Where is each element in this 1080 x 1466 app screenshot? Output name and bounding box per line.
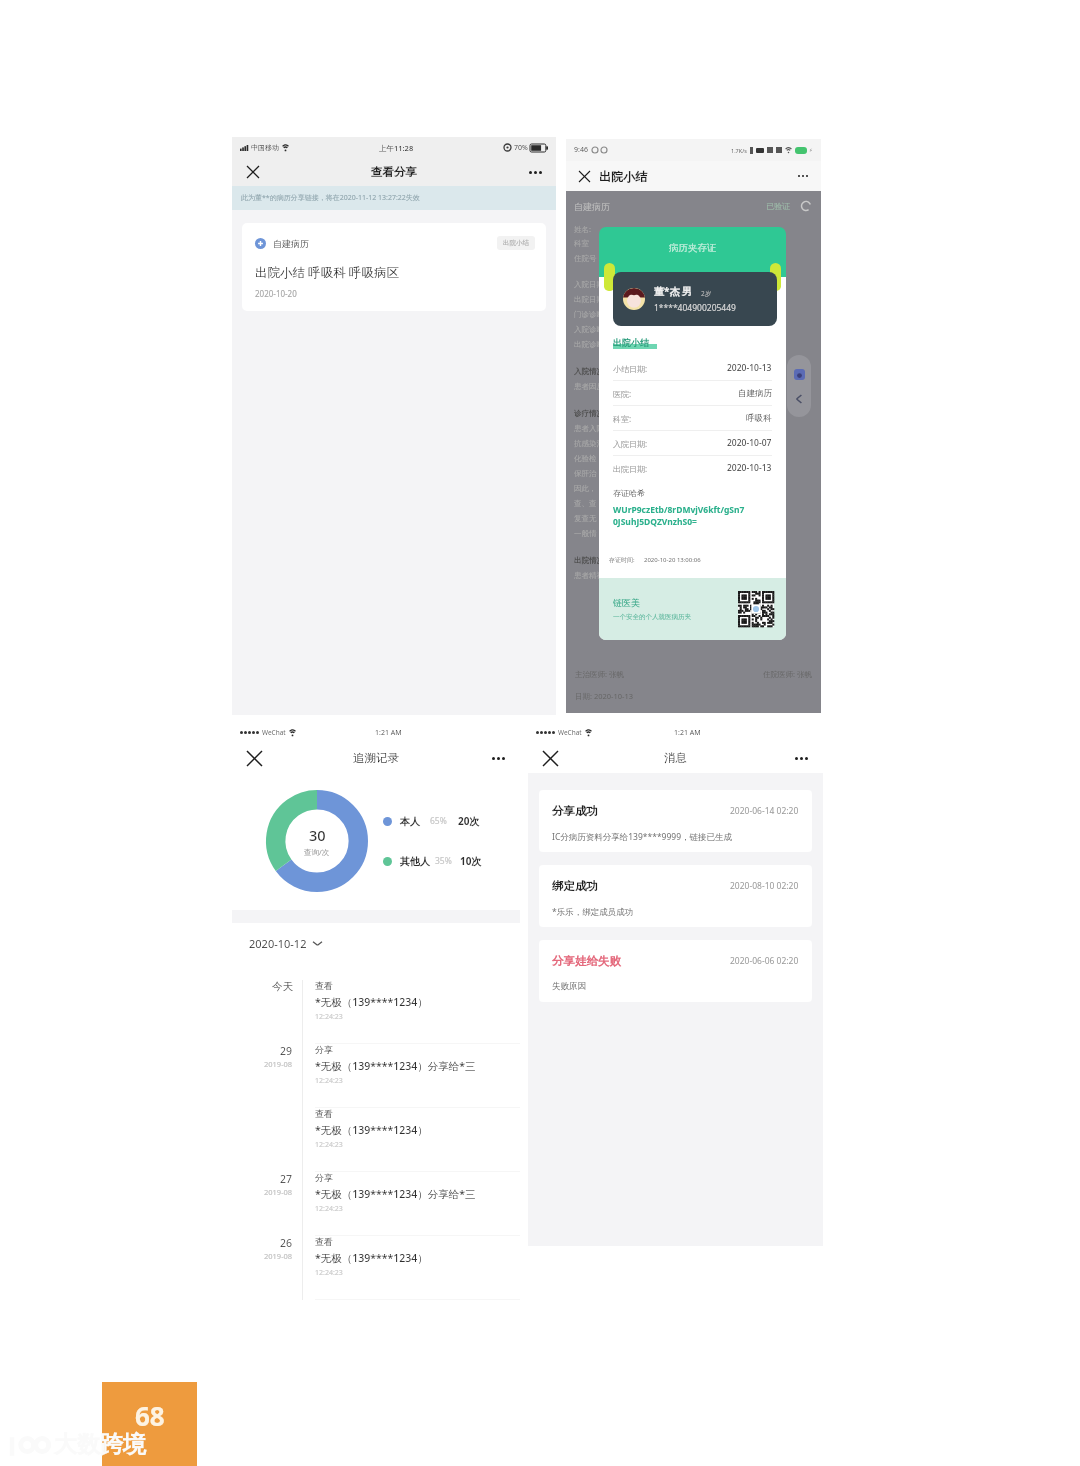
staticText: 查看 [315, 1108, 333, 1119]
staticText: 26 [280, 1236, 293, 1250]
staticText: 此为董**的病历分享链接，将在2020-11-12 13:27:22失效 [241, 193, 420, 203]
staticText: 2020-10-13 [727, 362, 772, 374]
staticText: 查看 [315, 980, 333, 991]
staticText: 小结日期: [613, 363, 648, 374]
staticText: 一个安全的个人就医病历夹 [613, 613, 691, 621]
staticText: 65% [430, 815, 447, 827]
button[interactable]: Close [539, 747, 561, 769]
staticText: 自建病历 [738, 388, 772, 399]
staticText: 出院小结 [613, 337, 649, 348]
staticText: 出院日期 [574, 295, 604, 304]
staticText: 2020-10-07 [727, 437, 772, 449]
staticText: 绑定成功 [552, 879, 598, 893]
staticText: 35% [435, 855, 452, 867]
button[interactable]: 查看 [315, 980, 520, 1044]
staticText: 诊疗情况 [574, 409, 604, 418]
staticText: 中国移动 [251, 143, 279, 152]
staticText: ⚡ [809, 147, 813, 153]
button[interactable]: More options [525, 162, 545, 182]
staticText: 70% [514, 143, 528, 153]
staticText: 2020-10-13 [727, 462, 772, 474]
staticText: 12:24:23 [315, 1140, 343, 1150]
staticText: 入院诊断 [574, 325, 604, 334]
staticText: 其他人 [400, 855, 430, 868]
staticText: 1:21 AM [674, 728, 701, 738]
staticText: 出院小结 [599, 169, 647, 184]
staticText: *无极（139****1234） [315, 995, 428, 1009]
staticText: 因此， [574, 484, 597, 493]
button[interactable]: 自建病历 [242, 223, 546, 311]
staticText: 2020-08-10 02:20 [730, 880, 799, 892]
staticText: 复查无 [574, 514, 597, 523]
button[interactable]: More options [487, 747, 509, 769]
button[interactable]: Close [575, 167, 593, 185]
button[interactable]: Quick actions [787, 355, 811, 417]
staticText: 患者因反 [574, 382, 604, 391]
staticText: 9:46 [574, 145, 588, 155]
staticText: 主治医师: 张帆 [575, 669, 624, 679]
staticText: 2岁 [701, 289, 712, 298]
staticText: 姓名: [574, 224, 592, 234]
staticText: *无极（139****1234）分享给*三 [315, 1187, 476, 1201]
staticText: 查看 [315, 1236, 333, 1247]
staticText: 12:24:23 [315, 1012, 343, 1022]
staticText: 10次 [460, 854, 482, 868]
staticText: *乐乐，绑定成员成功 [552, 906, 634, 918]
staticText: 保肝治 [574, 469, 597, 478]
button[interactable]: Close [243, 162, 263, 182]
staticText: IC分病历资料分享给139****9999，链接已生成 [552, 831, 733, 843]
staticText: 失败原因 [552, 981, 586, 992]
button[interactable]: 2020-10-12 [249, 936, 322, 951]
staticText: 自建病历 [273, 238, 309, 249]
staticText: 住院医师: 张帆 [763, 669, 812, 679]
button[interactable]: 绑定成功 [539, 865, 812, 927]
staticText: 出院小结 呼吸科 呼吸病区 [255, 264, 400, 281]
staticText: 入院日期: [613, 438, 648, 449]
button[interactable]: Close [243, 747, 265, 769]
staticText: 大数跨境 [54, 1430, 146, 1459]
staticText: 2020-06-14 02:20 [730, 805, 799, 817]
staticText: 病历夹存证 [669, 242, 717, 254]
button[interactable]: 分享 [315, 1044, 520, 1108]
staticText: 29 [280, 1044, 293, 1058]
staticText: WeChat [558, 728, 582, 737]
staticText: WUrP9czEtb/8rDMvjV6kft/gSn7 0JSuhJ5DQZVn… [613, 504, 745, 528]
staticText: 分享成功 [552, 804, 598, 818]
button[interactable]: More options [790, 747, 812, 769]
button[interactable]: 分享娃给失败 [539, 940, 812, 1002]
staticText: 出院日期: [613, 463, 648, 474]
staticText: 出院诊断 [574, 340, 604, 349]
staticText: 2020-10-20 13:00:06 [644, 556, 701, 564]
staticText: *无极（139****1234） [315, 1123, 428, 1137]
button[interactable]: More options [794, 167, 812, 185]
staticText: 存证哈希 [613, 488, 645, 498]
staticText: 出院小结 [503, 239, 529, 247]
button[interactable]: 链医美 [599, 578, 786, 640]
staticText: 分享 [315, 1044, 333, 1055]
staticText: 已验证 [766, 201, 790, 211]
staticText: 出院情况 [574, 556, 604, 565]
staticText: 追溯记录 [353, 751, 399, 765]
staticText: *无极（139****1234）分享给*三 [315, 1059, 476, 1073]
button[interactable]: 分享成功 [539, 790, 812, 852]
staticText: 门诊诊断 [574, 310, 604, 319]
staticText: WeChat [262, 728, 286, 737]
staticText: 上午11:28 [379, 143, 414, 153]
staticText: 患者精神 [574, 571, 604, 580]
staticText: 27 [280, 1172, 293, 1186]
staticText: 20次 [458, 814, 480, 828]
staticText: 分享娃给失败 [552, 954, 621, 968]
staticText: 1****404900205449 [654, 302, 736, 314]
button[interactable]: 查看 [315, 1108, 520, 1172]
staticText: 12:24:23 [315, 1204, 343, 1214]
staticText: 12:24:23 [315, 1268, 343, 1278]
button[interactable]: Refresh [799, 199, 813, 213]
staticText: 2019-08 [264, 1251, 293, 1261]
button[interactable]: 查看 [315, 1236, 520, 1300]
staticText: 呼吸科 [746, 413, 772, 424]
staticText: 12:24:23 [315, 1076, 343, 1086]
staticText: 1.7K/s [731, 147, 747, 154]
staticText: 2020-06-06 02:20 [730, 955, 799, 967]
button[interactable]: 分享 [315, 1172, 520, 1236]
staticText: 链医美 [613, 597, 640, 608]
